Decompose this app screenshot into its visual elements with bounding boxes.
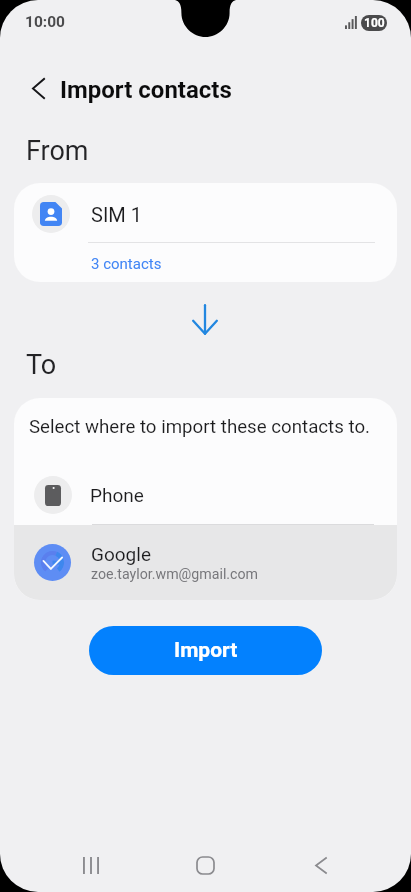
staticText: Select where to import these contacts to… [29,416,371,438]
staticText: To [26,349,57,381]
staticText: Import contacts [60,76,232,104]
staticText: Import [174,638,238,663]
button[interactable]: Back [292,837,349,892]
staticText: Phone [90,484,144,506]
button[interactable]: SIM 1 [14,183,397,282]
staticText: From [26,135,89,167]
staticText: SIM 1 [91,203,142,226]
staticText: 3 contacts [91,255,162,273]
button[interactable]: Import [89,626,322,675]
staticText: Google [91,543,151,565]
button[interactable]: Home [177,837,234,892]
button[interactable]: Phone [14,466,397,523]
staticText: 100 [364,16,385,30]
button[interactable]: Recent apps [62,837,119,892]
staticText: 10:00 [25,13,65,31]
button[interactable]: Back [20,70,56,106]
staticText: zoe.taylor.wm@gmail.com [91,566,259,583]
button[interactable]: Google [14,525,397,600]
